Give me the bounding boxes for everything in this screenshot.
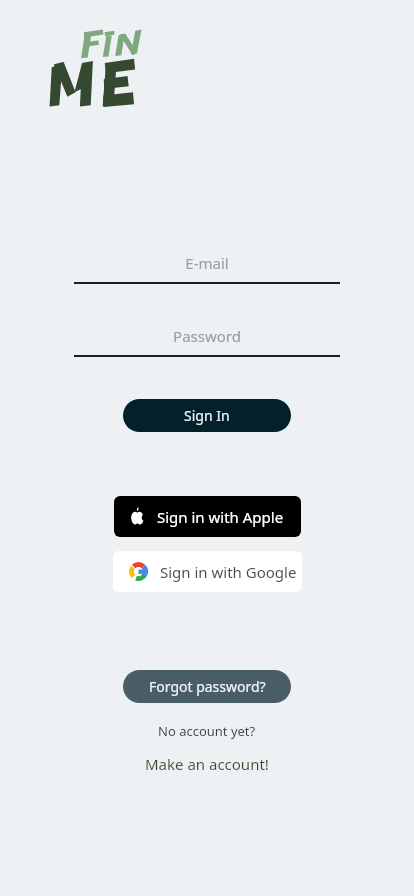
button[interactable]: No account yet? [150,720,264,742]
staticText: Sign in with Google [160,562,297,582]
staticText: E-mail [185,253,229,273]
staticText: Sign in with Apple [157,507,284,527]
staticText: Make an account! [145,754,269,774]
button[interactable]: Sign In [123,399,291,432]
button[interactable]: Sign in with Apple [114,496,301,537]
button[interactable]: Forgot password? [123,670,291,703]
staticText: Forgot password? [149,677,266,696]
staticText: Sign In [184,406,230,425]
button[interactable]: E-mail [74,250,340,284]
button[interactable]: Password [74,323,340,357]
staticText: No account yet? [158,722,256,740]
button[interactable]: Sign in with Google [113,551,302,592]
staticText: Password [173,326,241,346]
button[interactable]: Make an account! [137,752,277,776]
